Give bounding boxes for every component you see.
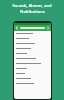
button[interactable]: Navigate up — [15, 26, 19, 30]
button[interactable] — [14, 76, 51, 81]
button[interactable] — [14, 66, 51, 71]
button[interactable] — [14, 71, 51, 76]
button[interactable] — [14, 46, 51, 51]
button[interactable] — [14, 51, 51, 56]
button[interactable] — [14, 56, 51, 61]
button[interactable] — [14, 31, 51, 36]
button[interactable] — [14, 41, 51, 46]
button[interactable] — [14, 36, 51, 41]
staticText: Sounds, Alarms, and — [12, 3, 52, 8]
button[interactable] — [14, 81, 51, 86]
button[interactable]: More options — [46, 26, 50, 30]
staticText: Notifications — [20, 9, 45, 14]
button[interactable]: Navigate up — [14, 25, 51, 31]
button[interactable] — [14, 61, 51, 66]
